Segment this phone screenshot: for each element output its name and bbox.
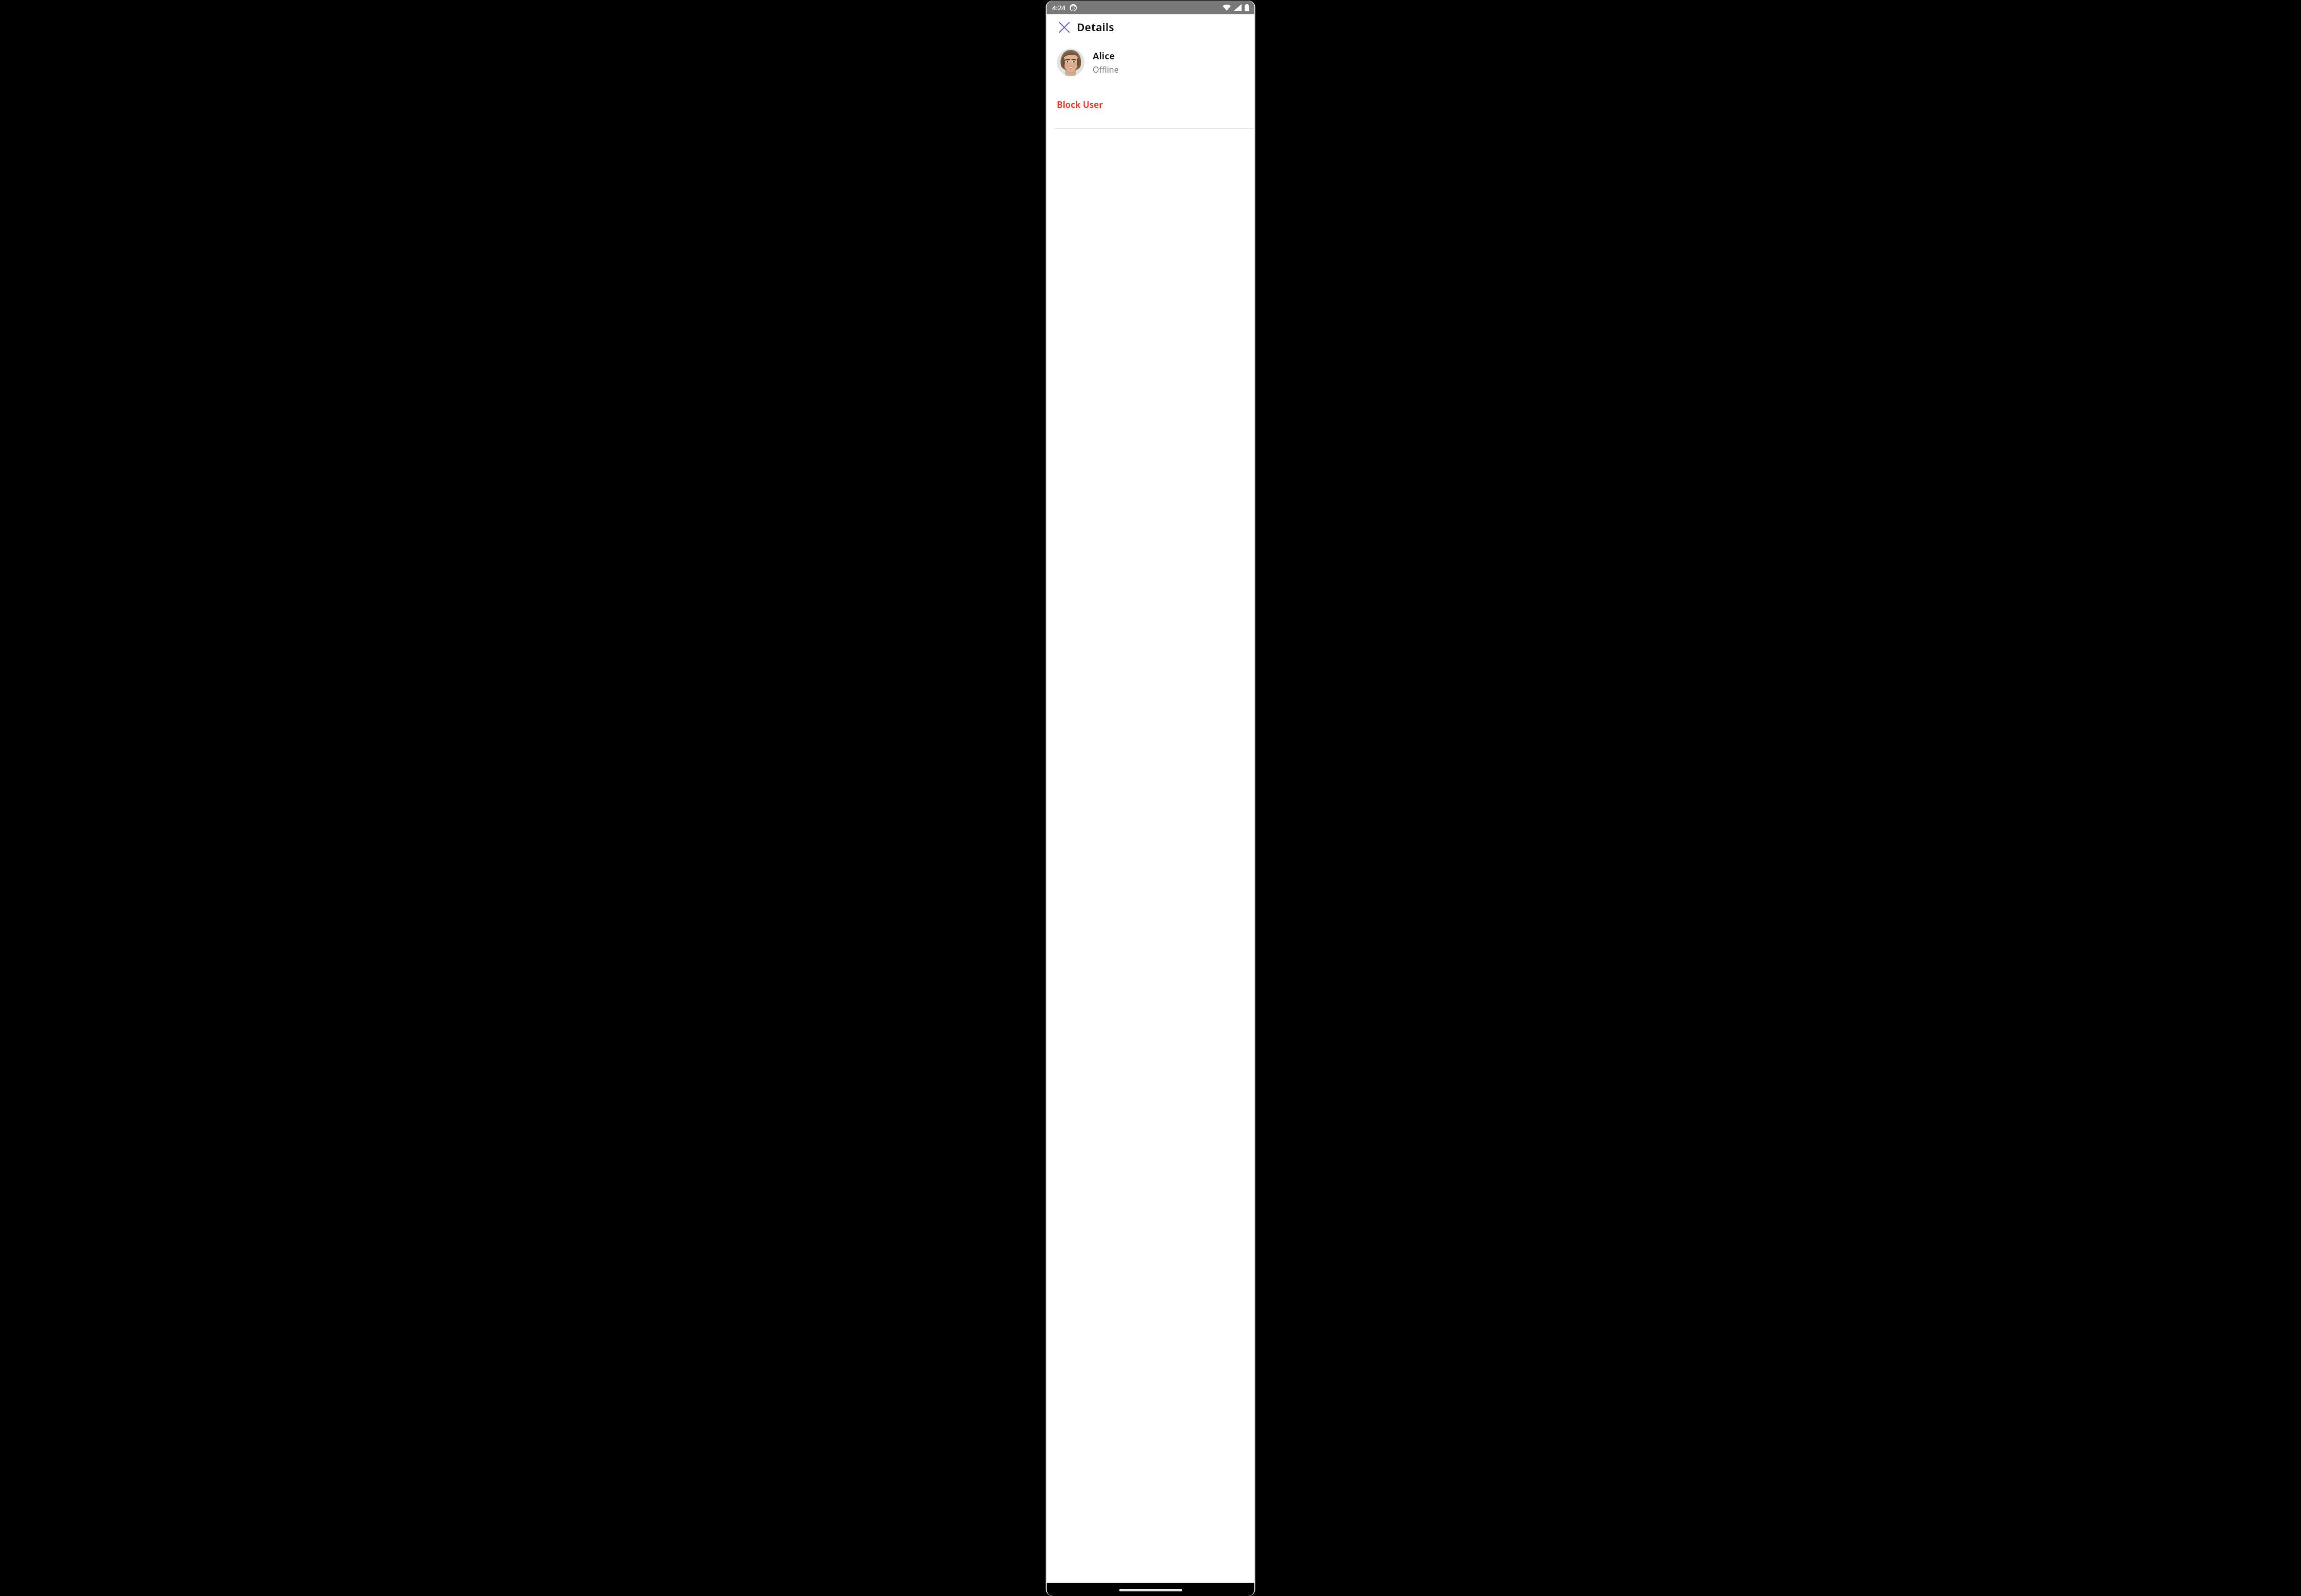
staticText: 4:24 bbox=[1052, 3, 1066, 12]
button[interactable]: Block User bbox=[1047, 98, 1254, 112]
button[interactable]: Close bbox=[1056, 19, 1072, 35]
staticText: Offline bbox=[1093, 64, 1119, 75]
staticText: Details bbox=[1077, 20, 1114, 35]
button[interactable]: Alice bbox=[1057, 49, 1254, 76]
staticText: Block User bbox=[1057, 99, 1103, 110]
staticText: Alice bbox=[1093, 50, 1115, 62]
